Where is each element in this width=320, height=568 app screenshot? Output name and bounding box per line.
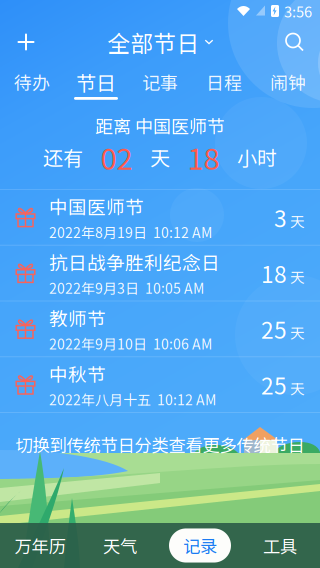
button[interactable]: 工具 [240, 528, 320, 563]
button[interactable]: 抗日战争胜利纪念日 [0, 246, 320, 301]
staticText: 天气 [103, 533, 137, 558]
staticText: 中秋节 [49, 360, 106, 387]
staticText: 3 [274, 201, 287, 234]
staticText: 教师节 [49, 304, 106, 331]
staticText: 天 [290, 210, 305, 231]
staticText: 切换到传统节日分类查看更多传统节日 [15, 432, 304, 457]
button[interactable]: Search [276, 25, 313, 58]
staticText: 2022年8月19日 10:12 AM [49, 222, 212, 242]
staticText: 天 [290, 322, 305, 343]
staticText: 抗日战争胜利纪念日 [49, 248, 220, 275]
button[interactable]: 教师节 [0, 301, 320, 356]
staticText: 2022年八月十五 10:12 AM [49, 389, 216, 409]
staticText: 2022年9月3日 10:05 AM [49, 277, 204, 298]
button[interactable]: 记事 [128, 62, 192, 102]
staticText: 记录 [183, 533, 217, 558]
staticText: 25 [261, 312, 287, 345]
staticText: 还有 [43, 142, 83, 171]
staticText: 2022年9月10日 10:06 AM [49, 333, 212, 354]
staticText: 全部节日 [107, 26, 199, 58]
button[interactable]: 万年历 [0, 528, 80, 563]
button[interactable]: 天气 [80, 528, 160, 563]
button[interactable]: 中秋节 [0, 357, 320, 412]
staticText: 待办 [14, 69, 50, 95]
staticText: 日程 [206, 69, 242, 95]
staticText: 万年历 [14, 533, 65, 558]
staticText: 3:56 [284, 0, 312, 22]
staticText: 中国医师节 [49, 193, 144, 220]
button[interactable]: 日程 [192, 62, 256, 102]
staticText: 25 [261, 368, 287, 401]
staticText: 天 [150, 142, 170, 171]
staticText: 工具 [263, 533, 297, 558]
staticText: 小时 [237, 142, 277, 171]
staticText: 天 [290, 266, 305, 287]
staticText: 节日 [76, 67, 116, 96]
staticText: 距离 中国医师节 [95, 112, 225, 139]
button[interactable]: 中国医师节 [0, 190, 320, 245]
staticText: 闹钟 [270, 69, 306, 95]
staticText: 记事 [142, 69, 178, 95]
staticText: 18 [261, 257, 287, 289]
button[interactable]: 闹钟 [256, 62, 320, 102]
button[interactable]: 节日 [64, 62, 128, 102]
staticText: 18 [187, 136, 219, 178]
button[interactable]: 全部节日 [107, 20, 213, 64]
button[interactable]: Add [7, 25, 45, 59]
staticText: 02 [100, 136, 132, 178]
staticText: 天 [290, 378, 305, 399]
button[interactable]: 待办 [0, 62, 64, 102]
button[interactable]: 记录 [160, 528, 240, 563]
